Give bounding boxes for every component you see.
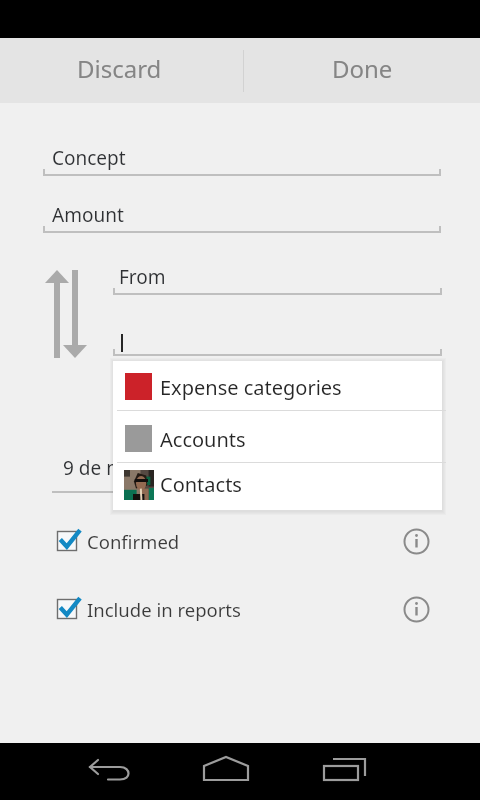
button[interactable]: Contacts <box>113 463 442 510</box>
staticText: From <box>119 264 166 290</box>
button[interactable]: Recent apps <box>316 743 378 800</box>
button[interactable]: Include in reports <box>0 590 480 628</box>
staticText: Amount <box>52 202 124 228</box>
staticText: Discard <box>77 52 162 85</box>
button[interactable]: Info <box>396 590 436 628</box>
button[interactable]: Accounts <box>113 411 442 462</box>
button[interactable]: Swap accounts <box>42 266 90 362</box>
staticText: Include in reports <box>87 597 241 622</box>
button[interactable]: Back <box>72 743 148 800</box>
staticText: Done <box>332 52 393 85</box>
button[interactable]: Discard <box>0 38 239 103</box>
staticText: 9 de mayo <box>63 455 156 481</box>
staticText: Contacts <box>160 471 242 498</box>
button[interactable]: From <box>113 260 442 298</box>
button[interactable]: Home <box>196 743 258 800</box>
staticText: Confirmed <box>87 529 180 554</box>
staticText: Expense categories <box>160 374 342 401</box>
button[interactable]: Info <box>396 522 436 560</box>
button[interactable]: 9 de mayo <box>52 455 192 495</box>
button[interactable]: Done <box>240 38 480 103</box>
button[interactable] <box>113 321 442 357</box>
staticText: Concept <box>52 145 126 171</box>
staticText: Accounts <box>160 426 246 453</box>
button[interactable]: Amount <box>43 198 441 236</box>
button[interactable]: Confirmed <box>0 522 480 560</box>
button[interactable]: Concept <box>43 141 441 179</box>
button[interactable]: Expense categories <box>113 361 442 410</box>
